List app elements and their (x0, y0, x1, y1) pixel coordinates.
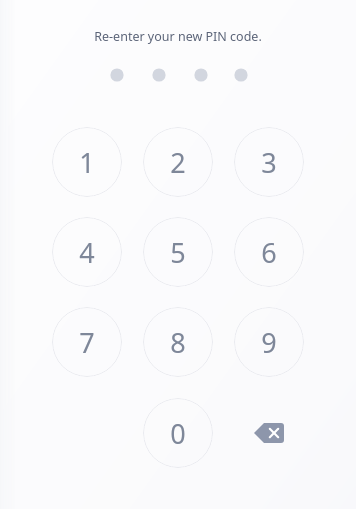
staticText: 6 (261, 234, 277, 271)
staticText: 4 (79, 234, 95, 271)
button[interactable]: 6 (234, 217, 304, 287)
staticText: 8 (170, 324, 186, 361)
staticText: 2 (170, 144, 186, 181)
staticText: 9 (261, 324, 277, 361)
button[interactable]: 7 (52, 307, 122, 377)
button[interactable]: Backspace (234, 398, 304, 468)
staticText: 1 (79, 144, 95, 181)
button[interactable]: 1 (52, 127, 122, 197)
button[interactable]: 8 (143, 307, 213, 377)
button[interactable]: 3 (234, 127, 304, 197)
staticText: 7 (79, 324, 95, 361)
button[interactable]: 2 (143, 127, 213, 197)
staticText: 5 (170, 234, 186, 271)
staticText: 3 (261, 144, 277, 181)
button[interactable]: 5 (143, 217, 213, 287)
staticText: 0 (170, 415, 186, 452)
button[interactable]: 0 (143, 398, 213, 468)
button[interactable]: 9 (234, 307, 304, 377)
staticText: Re-enter your new PIN code. (94, 28, 262, 45)
button[interactable]: 4 (52, 217, 122, 287)
